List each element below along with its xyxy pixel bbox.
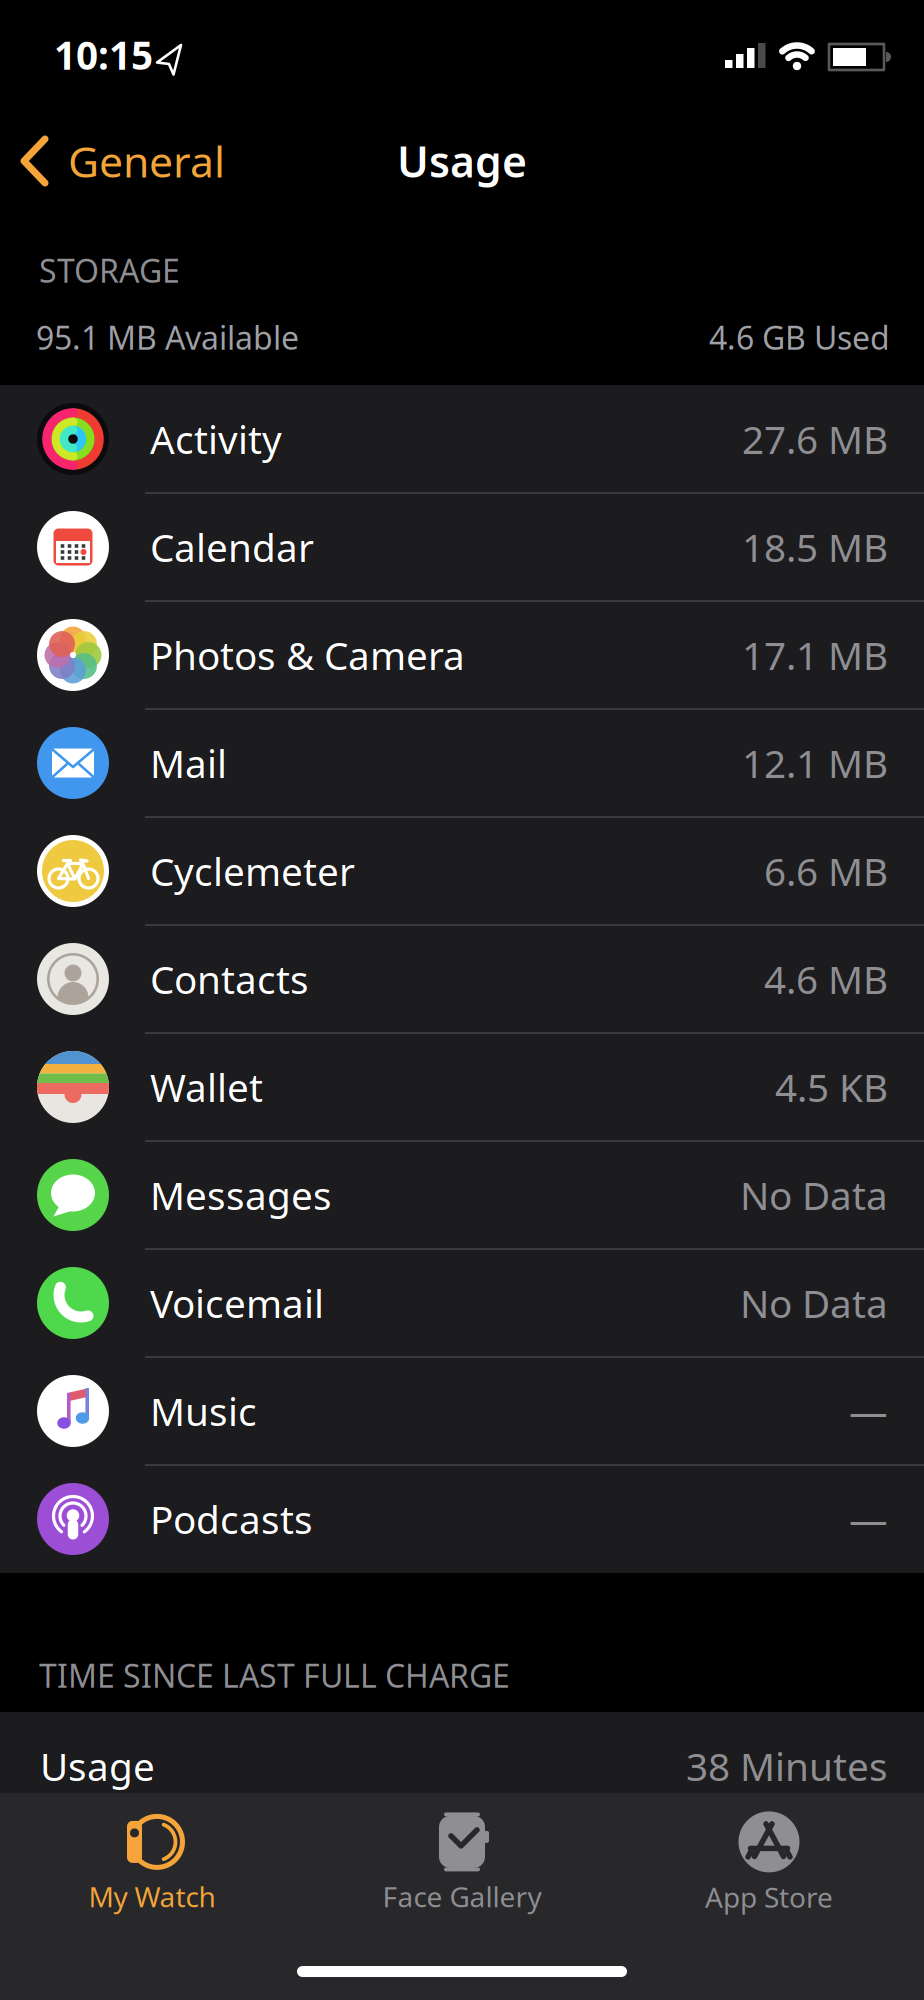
staticText: 4.6 GB Used [709, 316, 890, 358]
staticText: 95.1 MB Available [36, 316, 299, 358]
staticText: No Data [740, 1277, 888, 1329]
staticText: 4.6 MB [764, 953, 888, 1005]
staticText: Wallet [150, 1061, 263, 1113]
staticText: STORAGE [39, 249, 180, 291]
staticText: Contacts [150, 953, 309, 1005]
staticText: 6.6 MB [764, 845, 888, 897]
staticText: Photos & Camera [150, 629, 465, 681]
staticText: 4.5 KB [775, 1061, 888, 1113]
staticText: 10:15 [54, 29, 153, 80]
staticText: 12.1 MB [742, 737, 888, 789]
staticText: Usage [397, 133, 527, 189]
staticText: Cyclemeter [150, 845, 355, 897]
staticText: Messages [150, 1169, 332, 1221]
staticText: App Store [705, 1878, 833, 1916]
staticText: My Watch [88, 1878, 215, 1915]
staticText: Activity [150, 413, 282, 465]
staticText: — [849, 1385, 888, 1437]
staticText: Face Gallery [382, 1878, 541, 1915]
staticText: Music [150, 1385, 257, 1437]
staticText: 18.5 MB [742, 521, 888, 573]
staticText: Calendar [150, 521, 314, 573]
staticText: General [68, 133, 225, 189]
staticText: 27.6 MB [742, 413, 888, 465]
staticText: TIME SINCE LAST FULL CHARGE [39, 1654, 510, 1696]
staticText: No Data [740, 1169, 888, 1221]
staticText: Podcasts [150, 1493, 313, 1545]
staticText: Mail [150, 737, 227, 789]
button[interactable]: Face Gallery [337, 1808, 587, 1918]
staticText: 38 Minutes [686, 1740, 888, 1792]
button[interactable]: General [0, 133, 225, 189]
staticText: Usage [40, 1740, 155, 1792]
staticText: 17.1 MB [742, 629, 888, 681]
button[interactable]: My Watch [27, 1808, 277, 1918]
staticText: Voicemail [150, 1277, 324, 1329]
staticText: — [849, 1493, 888, 1545]
button[interactable]: App Store [644, 1808, 894, 1918]
